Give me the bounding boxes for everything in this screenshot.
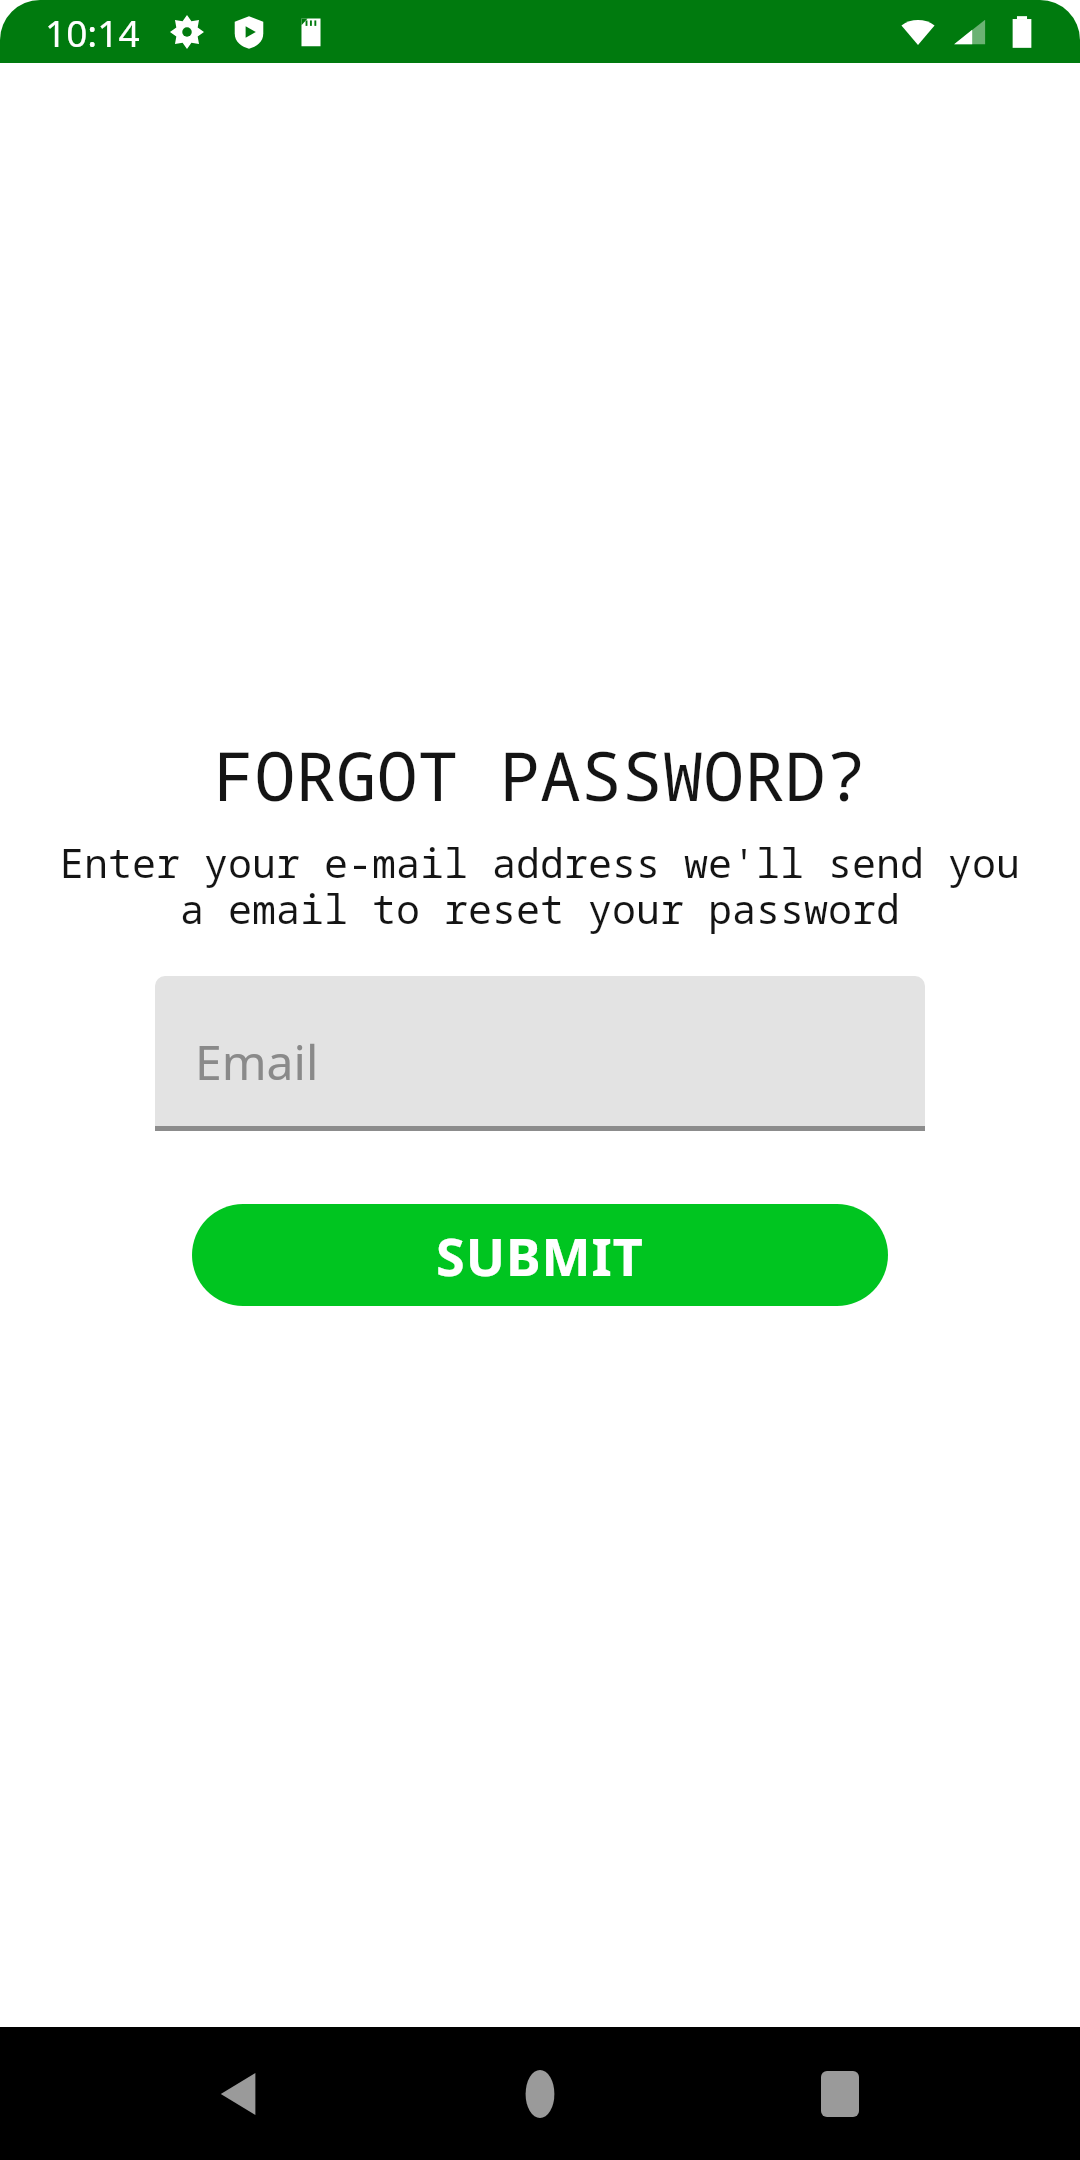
button[interactable]: Recent apps [780, 2034, 900, 2154]
button[interactable]: Back [180, 2034, 300, 2154]
staticText: Enter your e-mail address we'll send you… [38, 835, 1042, 936]
staticText: Email [195, 1029, 319, 1094]
button[interactable]: Email [155, 976, 925, 1131]
staticText: SUBMIT [436, 1220, 644, 1291]
staticText: 10:14 [45, 7, 140, 57]
button[interactable]: Home [480, 2034, 600, 2154]
staticText: FORGOT PASSWORD? [0, 728, 1080, 821]
button[interactable]: SUBMIT [192, 1204, 888, 1306]
